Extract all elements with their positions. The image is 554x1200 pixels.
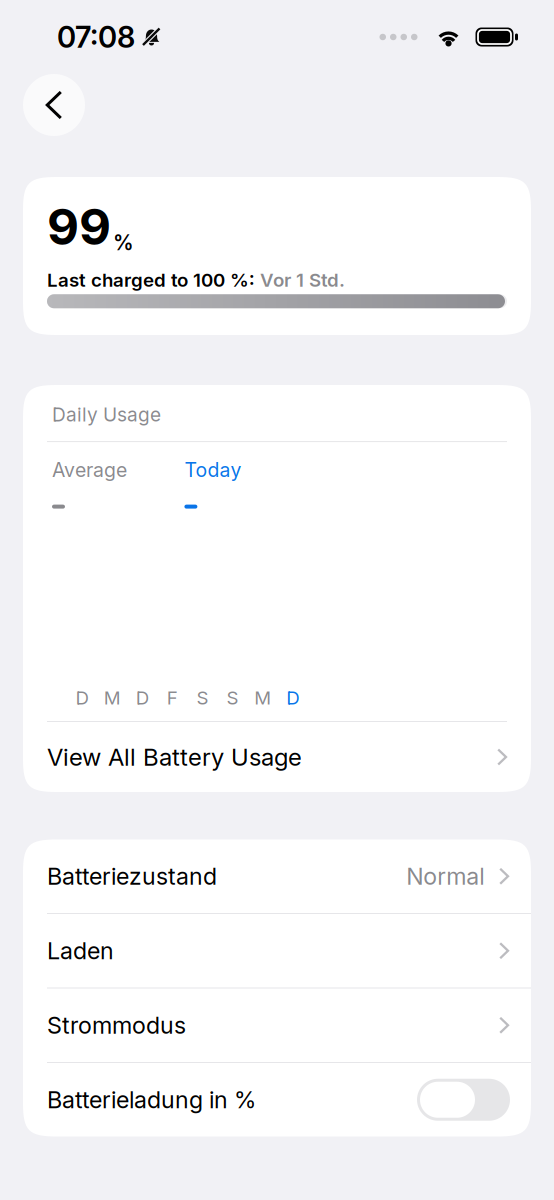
- staticText: Today: [184, 458, 241, 482]
- staticText: Strommodus: [47, 1011, 186, 1039]
- staticText: F: [167, 686, 178, 709]
- staticText: Laden: [47, 937, 114, 965]
- button[interactable]: Laden: [23, 914, 531, 987]
- staticText: M: [254, 686, 271, 709]
- staticText: D: [136, 686, 149, 709]
- staticText: D: [286, 686, 299, 709]
- staticText: Last charged to 100 %:: [47, 269, 255, 291]
- staticText: Vor 1 Std.: [255, 269, 345, 291]
- button[interactable]: Batterieladung in %: [23, 1063, 531, 1136]
- staticText: View All Battery Usage: [47, 742, 302, 771]
- staticText: D: [75, 686, 88, 709]
- staticText: S: [227, 686, 239, 709]
- button[interactable]: Strommodus: [23, 988, 531, 1062]
- staticText: M: [104, 686, 121, 709]
- staticText: Batterieladung in %: [47, 1086, 256, 1114]
- staticText: 99: [47, 197, 111, 257]
- button[interactable]: Back: [23, 74, 85, 136]
- staticText: 07:08: [57, 19, 135, 55]
- staticText: Daily Usage: [52, 403, 161, 426]
- button[interactable]: Batteriezustand: [23, 839, 531, 913]
- button[interactable]: View All Battery Usage: [47, 722, 507, 792]
- staticText: Normal: [406, 862, 484, 890]
- staticText: Batteriezustand: [47, 862, 217, 890]
- staticText: Average: [52, 458, 127, 482]
- staticText: %: [113, 230, 134, 255]
- staticText: S: [196, 686, 208, 709]
